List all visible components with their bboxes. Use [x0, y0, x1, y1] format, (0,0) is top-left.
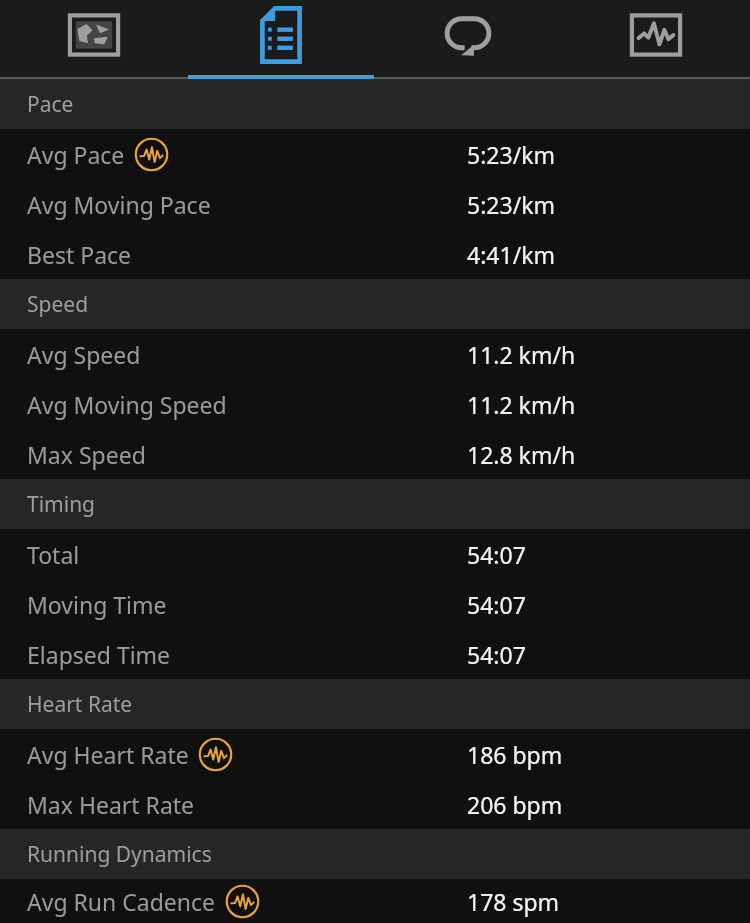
- other: Sensor data: [134, 137, 169, 172]
- staticText: 206 bpm: [467, 789, 563, 820]
- staticText: 5:23/km: [467, 189, 555, 220]
- button[interactable]: Details: [187, 0, 374, 79]
- staticText: 5:23/km: [467, 139, 555, 170]
- staticText: Avg Run Cadence: [27, 886, 216, 917]
- button[interactable]: Avg Heart Rate: [0, 729, 750, 779]
- other: Sensor data: [225, 884, 260, 919]
- staticText: 11.2 km/h: [467, 389, 576, 420]
- staticText: Running Dynamics: [27, 840, 212, 869]
- staticText: Max Heart Rate: [27, 789, 195, 820]
- staticText: Heart Rate: [27, 690, 133, 719]
- button[interactable]: Best Pace: [0, 229, 750, 279]
- staticText: 186 bpm: [467, 739, 563, 770]
- staticText: Moving Time: [27, 589, 167, 620]
- staticText: Avg Speed: [27, 339, 141, 370]
- button[interactable]: Max Heart Rate: [0, 779, 750, 829]
- button[interactable]: Avg Moving Pace: [0, 179, 750, 229]
- staticText: Elapsed Time: [27, 639, 171, 670]
- staticText: 54:07: [467, 589, 526, 620]
- staticText: Avg Pace: [27, 139, 125, 170]
- staticText: 54:07: [467, 639, 526, 670]
- staticText: 178 spm: [467, 886, 560, 917]
- staticText: 54:07: [467, 539, 526, 570]
- staticText: Avg Heart Rate: [27, 739, 189, 770]
- staticText: Total: [27, 539, 80, 570]
- button[interactable]: Avg Speed: [0, 329, 750, 379]
- button[interactable]: Moving Time: [0, 579, 750, 629]
- button[interactable]: Laps: [374, 0, 562, 79]
- staticText: 11.2 km/h: [467, 339, 576, 370]
- button[interactable]: Map: [0, 0, 187, 79]
- staticText: Pace: [27, 90, 74, 119]
- button[interactable]: Avg Run Cadence: [0, 879, 750, 923]
- button[interactable]: Avg Moving Speed: [0, 379, 750, 429]
- staticText: Max Speed: [27, 439, 146, 470]
- button[interactable]: Avg Pace: [0, 129, 750, 179]
- staticText: Avg Moving Speed: [27, 389, 227, 420]
- staticText: 12.8 km/h: [467, 439, 576, 470]
- staticText: Speed: [27, 290, 89, 319]
- staticText: 4:41/km: [467, 239, 555, 270]
- button[interactable]: Charts: [562, 0, 750, 79]
- button[interactable]: Total: [0, 529, 750, 579]
- button[interactable]: Elapsed Time: [0, 629, 750, 679]
- button[interactable]: Max Speed: [0, 429, 750, 479]
- staticText: Timing: [27, 490, 96, 519]
- staticText: Best Pace: [27, 239, 132, 270]
- staticText: Avg Moving Pace: [27, 189, 211, 220]
- other: Sensor data: [198, 737, 233, 772]
